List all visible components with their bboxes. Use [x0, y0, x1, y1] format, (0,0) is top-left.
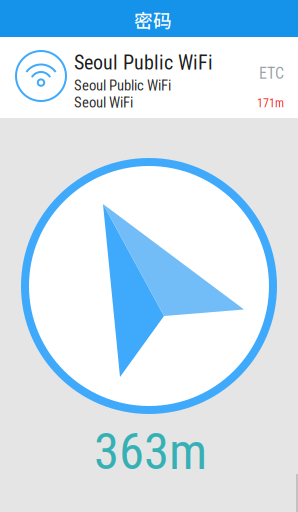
staticText: 密码: [134, 6, 172, 33]
staticText: 363m: [94, 422, 207, 481]
staticText: 171m: [257, 96, 284, 110]
staticText: Seoul Public WiFi: [74, 51, 213, 74]
staticText: Seoul Public WiFi: [74, 77, 171, 94]
staticText: ETC: [259, 64, 284, 83]
staticText: Seoul WiFi: [74, 94, 133, 111]
button[interactable]: Seoul Public WiFi: [0, 37, 298, 118]
